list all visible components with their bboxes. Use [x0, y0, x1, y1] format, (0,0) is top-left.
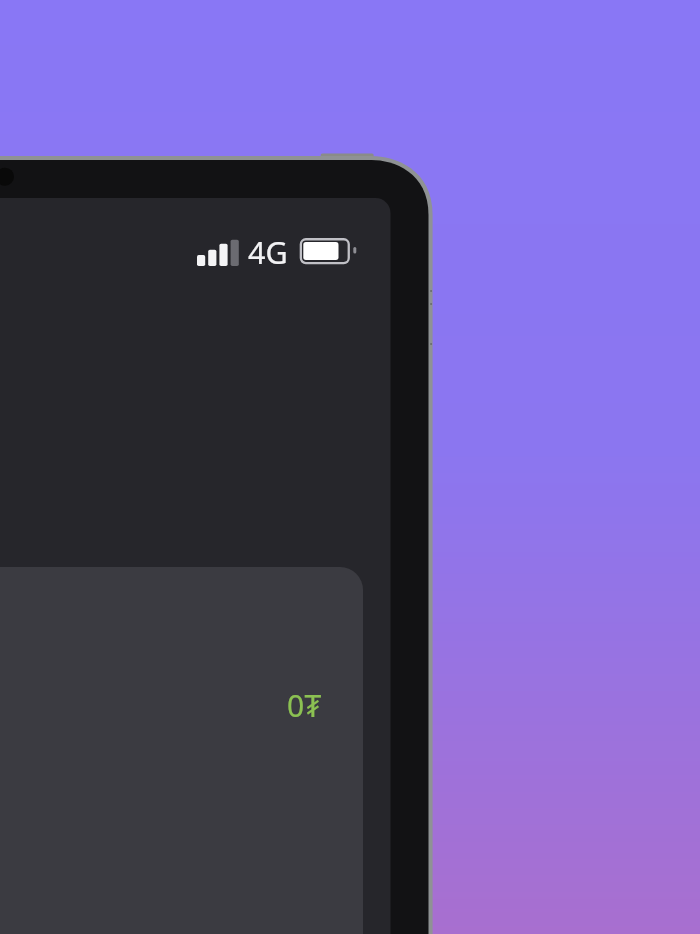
- button[interactable]: Battery full: [299, 237, 357, 266]
- staticText: 4G: [248, 231, 288, 273]
- button[interactable]: 0₮: [0, 567, 363, 934]
- button[interactable]: Mobile signal strength: [196, 237, 238, 266]
- staticText: 0₮: [287, 685, 322, 726]
